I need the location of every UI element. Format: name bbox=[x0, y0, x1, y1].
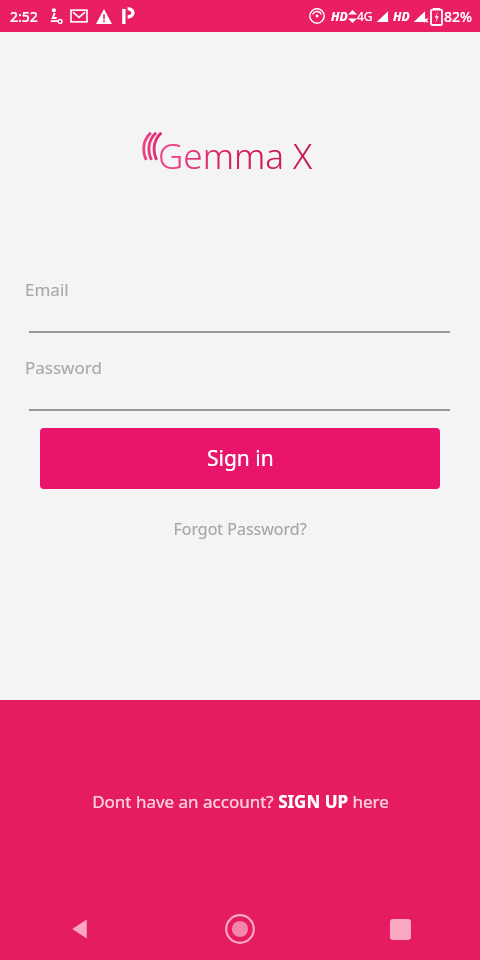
staticText: 82% bbox=[444, 7, 472, 26]
staticText: Email bbox=[25, 278, 69, 301]
button[interactable]: Forgot Password? bbox=[0, 509, 480, 549]
staticText: Forgot Password? bbox=[173, 518, 307, 540]
button[interactable]: Home bbox=[160, 898, 320, 960]
staticText: 2:52 bbox=[10, 7, 38, 26]
button[interactable]: Dont have an account? SIGN UP here bbox=[0, 782, 480, 820]
staticText: Dont have an account? SIGN UP here bbox=[92, 790, 389, 813]
button[interactable]: Recent apps bbox=[320, 898, 480, 960]
button[interactable]: Back bbox=[0, 898, 160, 960]
staticText: Gemma X bbox=[158, 132, 313, 180]
button[interactable]: Sign in bbox=[40, 428, 440, 489]
staticText: Password bbox=[25, 356, 102, 379]
staticText: Sign in bbox=[207, 444, 274, 473]
staticText: HD bbox=[393, 8, 410, 24]
staticText: HD bbox=[331, 8, 348, 24]
staticText: 4G bbox=[357, 8, 373, 24]
